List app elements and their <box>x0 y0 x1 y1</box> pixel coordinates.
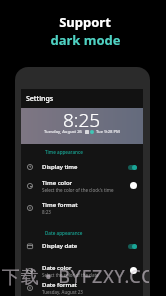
staticText: 8:23 <box>42 209 51 215</box>
staticText: Support <box>59 13 111 31</box>
button[interactable]: Time color <box>21 175 143 196</box>
staticText: Select the color of the clock's time <box>42 187 114 193</box>
staticText: Date format <box>42 281 77 289</box>
staticText: Time appearance <box>45 149 83 155</box>
button[interactable]: Date format <box>21 277 143 296</box>
staticText: Select the color of the date <box>42 272 99 278</box>
staticText: Display time <box>42 163 78 171</box>
staticText: Display date <box>42 242 78 250</box>
staticText: 8:25 <box>63 107 101 133</box>
staticText: Date appearance <box>45 230 83 236</box>
staticText: 用下载 • BYFZXY.CO <box>0 264 149 288</box>
staticText: Tue 9:28 PM <box>96 129 120 135</box>
button[interactable]: Date color <box>21 260 143 281</box>
button[interactable]: Display date <box>21 236 143 256</box>
button[interactable]: Display time <box>21 157 143 177</box>
staticText: dark mode <box>50 31 121 49</box>
button[interactable]: Time format <box>21 197 143 218</box>
staticText: Time format <box>42 201 78 209</box>
staticText: Date color <box>42 264 72 272</box>
staticText: Settings <box>26 94 54 104</box>
staticText: Tuesday, August 26 <box>44 129 83 135</box>
staticText: Tuesday, August 23 <box>42 289 83 295</box>
staticText: Time color <box>42 179 73 187</box>
